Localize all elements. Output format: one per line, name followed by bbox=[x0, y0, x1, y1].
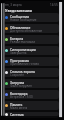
button[interactable]: Система bbox=[4, 112, 59, 116]
staticText: Уведомления bbox=[5, 8, 32, 13]
staticText: пн, 3 марта bbox=[5, 3, 22, 7]
staticText: Программа bbox=[10, 58, 29, 62]
staticText: Сообщения bbox=[10, 14, 30, 18]
staticText: Новое сообщение bbox=[10, 18, 37, 22]
staticText: Батарея bbox=[10, 36, 24, 40]
button[interactable]: Память bbox=[4, 101, 59, 110]
staticText: Система bbox=[10, 112, 24, 116]
staticText: Загрузка bbox=[10, 80, 25, 84]
staticText: Завершена bbox=[10, 51, 27, 55]
staticText: Синхронизация bbox=[10, 47, 36, 51]
staticText: Сохранён bbox=[10, 73, 25, 77]
button[interactable]: Обновление bbox=[4, 24, 59, 33]
staticText: Память bbox=[10, 102, 23, 106]
button[interactable]: Загрузка bbox=[4, 79, 59, 88]
staticText: Обновление bbox=[10, 25, 31, 29]
staticText: Приложение готово bbox=[10, 62, 40, 66]
button[interactable]: Календарь bbox=[4, 90, 59, 99]
staticText: Снимок экрана bbox=[10, 69, 35, 73]
staticText: Календарь bbox=[10, 91, 28, 95]
button[interactable]: Снимок экрана bbox=[4, 68, 59, 77]
staticText: 14:55 bbox=[50, 3, 58, 7]
button[interactable]: Батарея bbox=[4, 35, 59, 44]
staticText: Режим экономии bbox=[10, 40, 36, 44]
staticText: Мало места bbox=[10, 106, 28, 110]
button[interactable]: Синхронизация bbox=[4, 46, 59, 55]
button[interactable]: Сообщения bbox=[4, 13, 59, 22]
button[interactable]: Программа bbox=[4, 57, 59, 66]
staticText: Доступно обновление bbox=[10, 29, 43, 33]
staticText: Файл загружен bbox=[10, 84, 32, 88]
staticText: Встреча в 15:00 bbox=[10, 95, 33, 99]
